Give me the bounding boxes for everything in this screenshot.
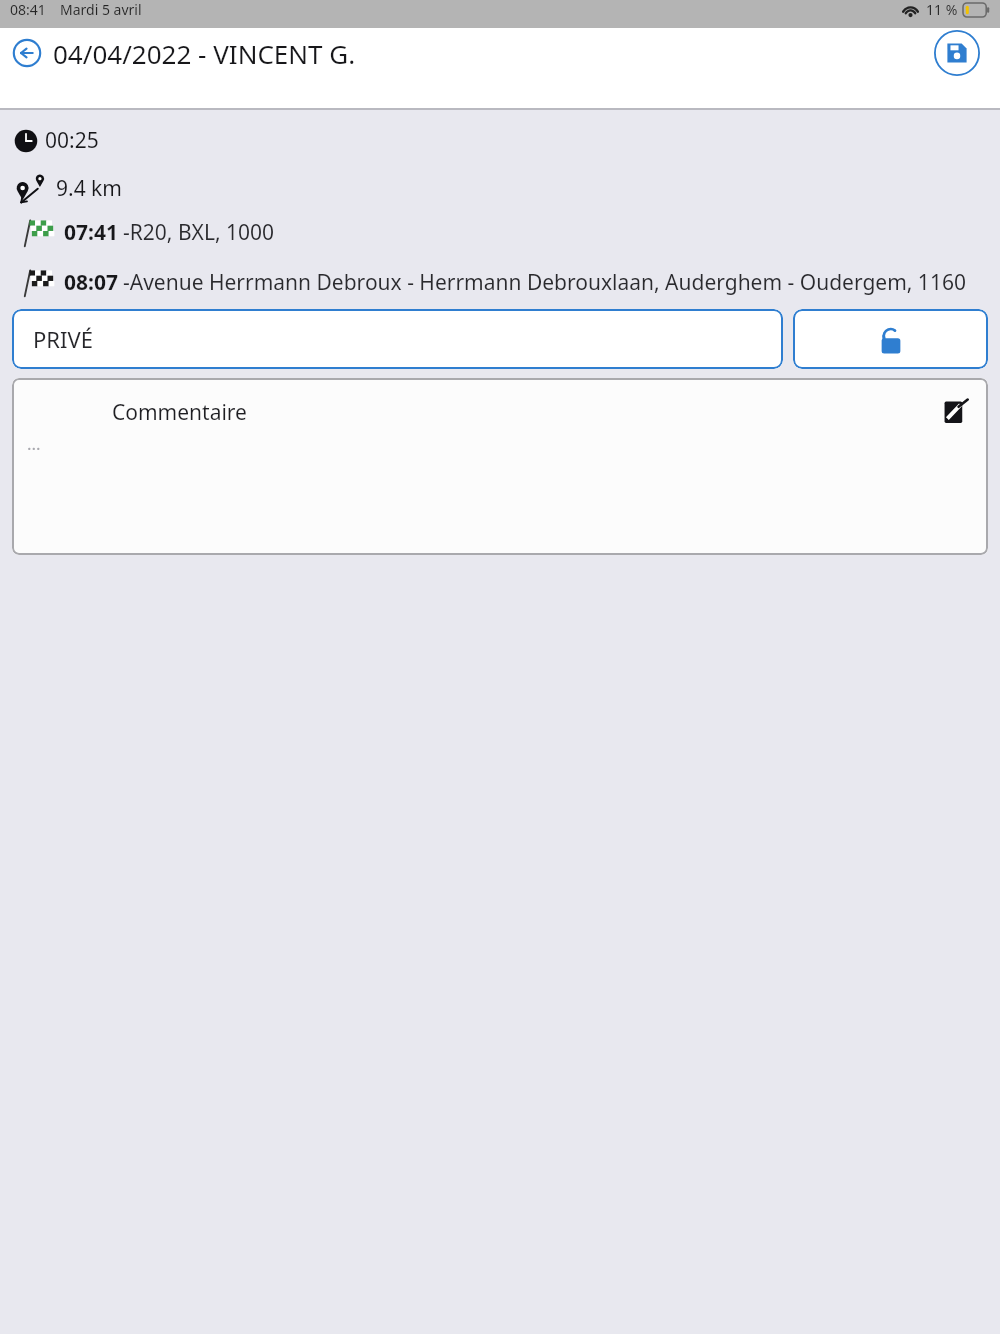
button[interactable]: Back: [10, 36, 44, 70]
button[interactable]: PRIVÉ: [12, 309, 783, 369]
staticText: -Avenue Herrmann Debroux - Herrmann Debr…: [123, 268, 966, 297]
staticText: ...: [27, 432, 41, 455]
staticText: Commentaire: [112, 398, 247, 427]
staticText: 00:25: [45, 126, 99, 155]
button[interactable]: Unlocked, toggle privacy: [793, 309, 988, 369]
staticText: PRIVÉ: [33, 324, 93, 354]
staticText: 08:41: [10, 0, 46, 19]
staticText: 9.4 km: [56, 174, 122, 203]
staticText: Mardi 5 avril: [60, 0, 142, 19]
staticText: 08:07: [64, 268, 118, 297]
staticText: 04/04/2022 - VINCENT G.: [53, 36, 356, 71]
button[interactable]: Save: [932, 28, 982, 78]
staticText: 11 %: [926, 0, 958, 19]
staticText: 07:41: [64, 218, 118, 247]
button[interactable]: Edit comment: [940, 396, 972, 428]
button[interactable]: Commentaire: [12, 378, 988, 555]
staticText: -R20, BXL, 1000: [123, 218, 275, 247]
